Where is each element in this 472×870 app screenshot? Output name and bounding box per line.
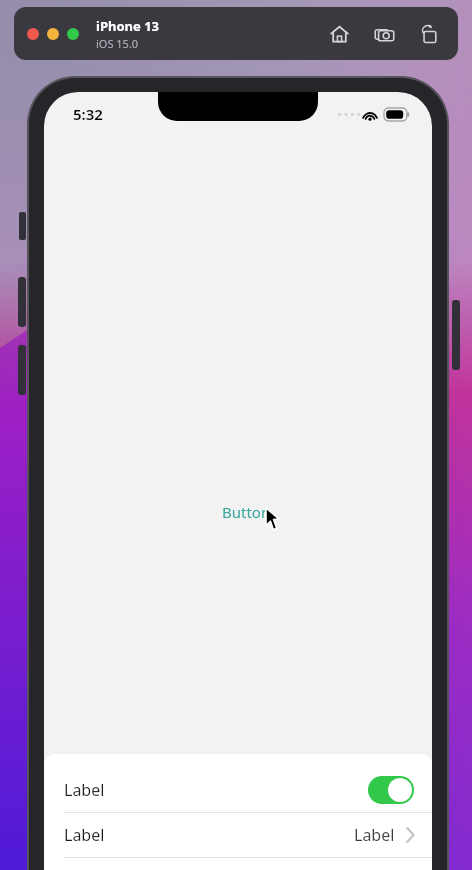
button[interactable]: Zoom — [67, 28, 79, 40]
button[interactable]: Label — [44, 768, 432, 812]
button[interactable]: Button — [214, 498, 279, 526]
button[interactable]: Minimize — [47, 28, 59, 40]
button[interactable]: Close — [27, 28, 39, 40]
button[interactable]: Home — [325, 20, 353, 48]
staticText: Label — [64, 779, 105, 801]
button[interactable]: Label — [44, 813, 432, 857]
staticText: 5:32 — [73, 104, 103, 124]
button[interactable]: Toggle — [368, 776, 414, 804]
button[interactable]: Rotate — [415, 20, 443, 48]
button[interactable]: Screenshot — [370, 20, 398, 48]
staticText: Button — [222, 502, 271, 522]
staticText: Label — [64, 824, 105, 846]
staticText: Label — [354, 824, 395, 846]
staticText: iOS 15.0 — [96, 36, 139, 51]
staticText: iPhone 13 — [96, 17, 159, 35]
